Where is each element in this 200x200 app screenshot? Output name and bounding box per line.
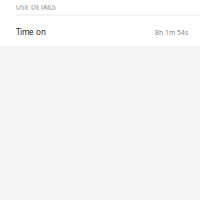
staticText: USE DETAILS <box>16 3 56 11</box>
staticText: 8h 1m 54s <box>155 28 188 37</box>
staticText: Time on <box>16 27 46 37</box>
button[interactable]: Time on <box>0 15 200 46</box>
